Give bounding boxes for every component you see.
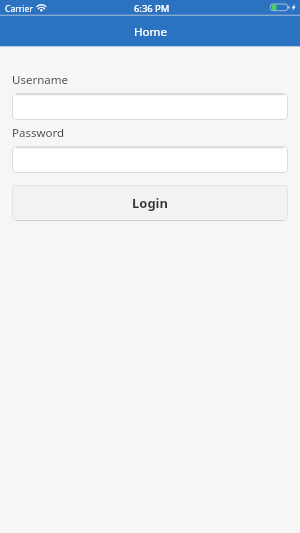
- other: Battery charging: [269, 3, 297, 12]
- staticText: Home: [134, 24, 167, 40]
- staticText: 6:36 PM: [134, 2, 170, 15]
- button[interactable]: Home: [0, 16, 300, 46]
- staticText: Carrier: [5, 3, 33, 15]
- other: Wi-Fi: [36, 3, 47, 12]
- button[interactable]: Login: [12, 185, 288, 221]
- staticText: Password: [12, 125, 65, 141]
- button[interactable]: [12, 93, 288, 120]
- button[interactable]: [12, 146, 288, 173]
- staticText: Username: [12, 72, 68, 88]
- staticText: Login: [132, 194, 168, 212]
